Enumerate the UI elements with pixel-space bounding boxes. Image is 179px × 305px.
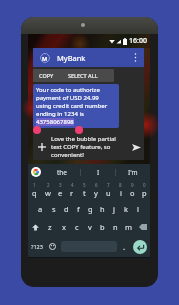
button[interactable]: k bbox=[120, 199, 132, 218]
staticText: 9 bbox=[131, 182, 134, 188]
staticText: y bbox=[94, 188, 98, 198]
button[interactable]: 9 bbox=[126, 180, 138, 199]
staticText: b bbox=[100, 222, 105, 232]
staticText: I'm bbox=[128, 168, 138, 177]
staticText: f bbox=[77, 204, 80, 214]
button[interactable]: z bbox=[43, 218, 57, 236]
button[interactable]: 2 bbox=[41, 180, 54, 199]
staticText: g bbox=[88, 204, 93, 214]
button[interactable]: x bbox=[57, 218, 70, 236]
staticText: SELECT ALL bbox=[68, 72, 98, 79]
staticText: t bbox=[83, 188, 86, 198]
button[interactable]: Shift bbox=[28, 218, 43, 236]
button[interactable]: More options bbox=[128, 50, 143, 65]
staticText: l bbox=[137, 204, 139, 214]
staticText: the bbox=[57, 168, 68, 177]
button[interactable]: M bbox=[33, 48, 144, 67]
staticText: s bbox=[52, 204, 56, 214]
button[interactable]: 1 bbox=[28, 180, 41, 199]
button[interactable]: l bbox=[132, 199, 144, 218]
button[interactable]: COPY bbox=[33, 69, 114, 82]
staticText: I bbox=[97, 168, 100, 177]
staticText: a bbox=[38, 204, 43, 214]
button[interactable]: Attach bbox=[33, 134, 51, 160]
staticText: x bbox=[62, 222, 66, 232]
staticText: using credit card number bbox=[36, 102, 108, 110]
button[interactable]: Your code to authorize bbox=[33, 84, 119, 128]
staticText: 6 bbox=[95, 182, 98, 188]
staticText: Love the bubble partial bbox=[51, 135, 116, 143]
staticText: d bbox=[64, 204, 69, 214]
staticText: n bbox=[113, 222, 118, 232]
staticText: e bbox=[58, 188, 63, 198]
button[interactable]: v bbox=[83, 218, 96, 236]
staticText: h bbox=[100, 204, 105, 214]
button[interactable]: . bbox=[119, 236, 130, 257]
staticText: payment of USD 24.99 bbox=[36, 94, 99, 102]
staticText: 3 bbox=[59, 182, 62, 188]
staticText: 8 bbox=[119, 182, 122, 188]
staticText: convenient! bbox=[51, 151, 84, 159]
button[interactable]: 6 bbox=[90, 180, 102, 199]
staticText: . bbox=[123, 241, 126, 252]
staticText: v bbox=[88, 222, 92, 232]
button[interactable]: Emoji bbox=[46, 236, 59, 257]
staticText: Your code to authorize bbox=[36, 86, 100, 94]
staticText: 43758067898 bbox=[36, 118, 74, 126]
button[interactable]: n bbox=[109, 218, 122, 236]
staticText: c bbox=[75, 222, 79, 232]
staticText: 4 bbox=[71, 182, 74, 188]
button[interactable]: 7 bbox=[102, 180, 114, 199]
staticText: COPY bbox=[39, 72, 54, 79]
staticText: text COPY feature, so bbox=[51, 143, 111, 151]
button[interactable]: 5 bbox=[78, 180, 90, 199]
staticText: u bbox=[106, 188, 111, 198]
button[interactable]: j bbox=[108, 199, 120, 218]
staticText: ending in 1234 is bbox=[36, 110, 84, 118]
button[interactable]: Enter bbox=[133, 240, 147, 254]
staticText: p bbox=[142, 188, 147, 198]
staticText: MyBank bbox=[57, 53, 86, 63]
staticText: q bbox=[32, 188, 37, 198]
staticText: 1 bbox=[33, 182, 36, 188]
staticText: 16:00 bbox=[129, 36, 147, 46]
staticText: j bbox=[113, 204, 115, 214]
staticText: z bbox=[48, 222, 52, 232]
staticText: 7 bbox=[107, 182, 110, 188]
staticText: o bbox=[130, 188, 135, 198]
button[interactable]: c bbox=[70, 218, 83, 236]
staticText: 0 bbox=[143, 182, 146, 188]
staticText: ?123 bbox=[31, 243, 43, 250]
button[interactable]: ?123 bbox=[28, 236, 46, 257]
staticText: 5 bbox=[83, 182, 86, 188]
button[interactable]: Send bbox=[128, 139, 144, 155]
button[interactable]: s bbox=[47, 199, 60, 218]
button[interactable]: h bbox=[96, 199, 108, 218]
button[interactable]: m bbox=[122, 218, 135, 236]
button[interactable]: d bbox=[60, 199, 72, 218]
button[interactable]: 3 bbox=[54, 180, 66, 199]
staticText: 2 bbox=[47, 182, 50, 188]
staticText: M bbox=[42, 55, 48, 62]
button[interactable]: 0 bbox=[138, 180, 150, 199]
button[interactable]: 8 bbox=[114, 180, 126, 199]
button[interactable]: a bbox=[34, 199, 47, 218]
staticText: r bbox=[70, 188, 74, 198]
staticText: m bbox=[125, 222, 133, 232]
button[interactable]: f bbox=[72, 199, 84, 218]
button[interactable]: b bbox=[96, 218, 109, 236]
button[interactable]: Backspace bbox=[135, 218, 150, 236]
staticText: i bbox=[120, 188, 122, 198]
staticText: k bbox=[124, 204, 129, 214]
button[interactable]: 4 bbox=[66, 180, 78, 199]
staticText: w bbox=[45, 188, 51, 198]
button[interactable]: g bbox=[84, 199, 96, 218]
